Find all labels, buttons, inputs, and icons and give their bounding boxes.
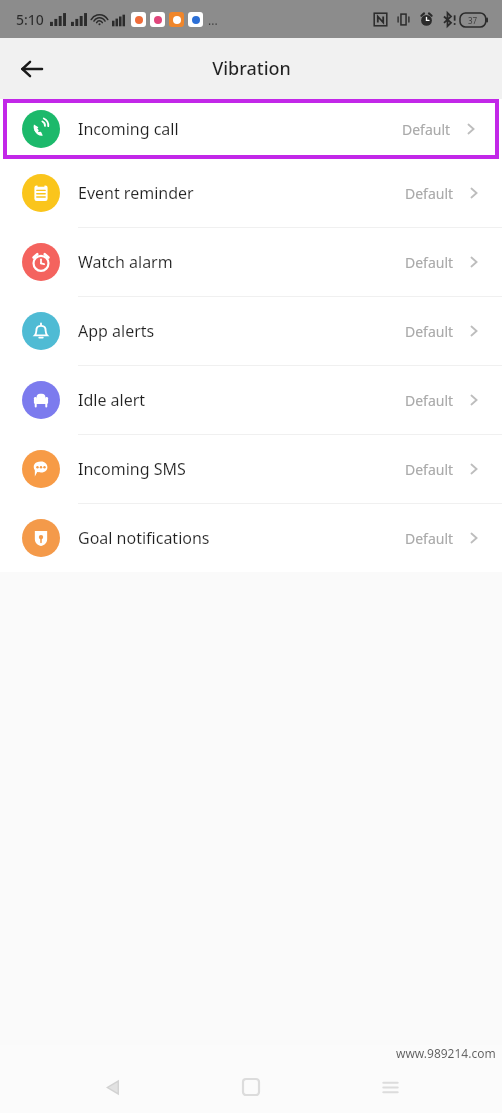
button[interactable]: Home [225,1061,277,1113]
staticText: Default [405,253,454,272]
staticText: Default [405,184,454,203]
button[interactable]: Watch alarm [0,228,502,296]
button[interactable]: Back [8,45,56,93]
staticText: Event reminder [78,182,194,204]
button[interactable]: Goal notifications [0,504,502,572]
staticText: Default [405,460,454,479]
staticText: Goal notifications [78,527,210,549]
button[interactable]: Back [87,1061,139,1113]
button[interactable]: Idle alert [0,366,502,434]
staticText: www.989214.com [396,1045,496,1061]
button[interactable]: App alerts [0,297,502,365]
staticText: Idle alert [78,389,146,411]
staticText: Default [405,391,454,410]
staticText: App alerts [78,320,155,342]
button[interactable]: Recent apps [364,1061,416,1113]
staticText: Default [405,529,454,548]
staticText: ... [208,12,218,28]
staticText: Incoming call [78,118,179,140]
button[interactable]: Event reminder [0,159,502,227]
staticText: 5:10 [16,10,44,29]
button[interactable]: Incoming SMS [0,435,502,503]
staticText: 37 [468,15,478,26]
staticText: Vibration [212,56,291,81]
staticText: Incoming SMS [78,458,186,480]
staticText: Default [405,322,454,341]
button[interactable]: Incoming call [3,99,499,159]
staticText: Default [402,120,451,139]
staticText: Watch alarm [78,251,173,273]
